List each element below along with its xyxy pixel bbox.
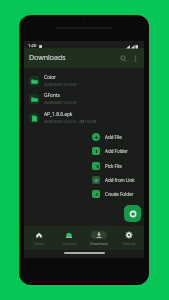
button[interactable]: Category bbox=[54, 226, 84, 250]
staticText: Category bbox=[62, 241, 77, 246]
button[interactable]: AP_1.8.6.apk bbox=[29, 109, 140, 126]
button[interactable]: Add from Link bbox=[92, 173, 135, 187]
staticText: Downloads bbox=[29, 53, 66, 63]
button[interactable]: Add Folder bbox=[92, 144, 128, 158]
staticText: 26/08/2023 13:27:00 bbox=[44, 100, 77, 105]
staticText: Settings bbox=[123, 241, 136, 246]
staticText: Add File bbox=[105, 134, 122, 140]
button[interactable]: GFonts bbox=[29, 90, 140, 107]
staticText: Pick File bbox=[105, 163, 122, 169]
staticText: Home bbox=[34, 241, 44, 246]
button[interactable]: Color bbox=[29, 72, 140, 89]
staticText: 26/08/2023 13:32:51 - 2M1 55 KB bbox=[44, 119, 97, 124]
staticText: Add from Link bbox=[105, 177, 135, 183]
button[interactable]: Create Folder bbox=[92, 187, 134, 201]
button[interactable]: More options bbox=[129, 52, 141, 64]
staticText: GFonts bbox=[44, 92, 60, 99]
staticText: Color bbox=[44, 74, 57, 81]
button[interactable]: Pick File bbox=[92, 159, 122, 173]
staticText: 1:20 bbox=[28, 43, 37, 49]
button[interactable]: Add bbox=[124, 205, 141, 222]
staticText: Downloads bbox=[90, 241, 108, 246]
button[interactable]: Search bbox=[117, 52, 129, 64]
staticText: Create Folder bbox=[105, 191, 134, 197]
staticText: Add Folder bbox=[105, 148, 128, 154]
button[interactable]: Home bbox=[24, 226, 54, 250]
button[interactable]: Add File bbox=[92, 130, 122, 144]
staticText: AP_1.8.6.apk bbox=[44, 111, 73, 118]
staticText: 26/08/2023 13:10:00 bbox=[44, 82, 77, 87]
button[interactable]: Downloads bbox=[84, 226, 114, 250]
button[interactable]: Settings bbox=[114, 226, 144, 250]
